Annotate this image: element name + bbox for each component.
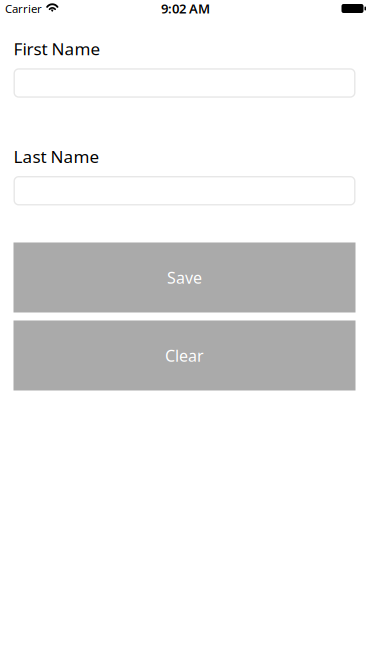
staticText: Clear	[165, 345, 204, 366]
staticText: Carrier	[5, 1, 42, 16]
staticText: 9:02 AM	[161, 0, 210, 17]
staticText: Last Name	[13, 145, 99, 168]
button[interactable]: Last Name	[13, 176, 355, 205]
staticText: Save	[167, 267, 202, 288]
button[interactable]: Save	[13, 242, 355, 312]
button[interactable]: First Name	[13, 68, 355, 98]
staticText: First Name	[13, 37, 100, 60]
button[interactable]: Clear	[13, 320, 355, 390]
